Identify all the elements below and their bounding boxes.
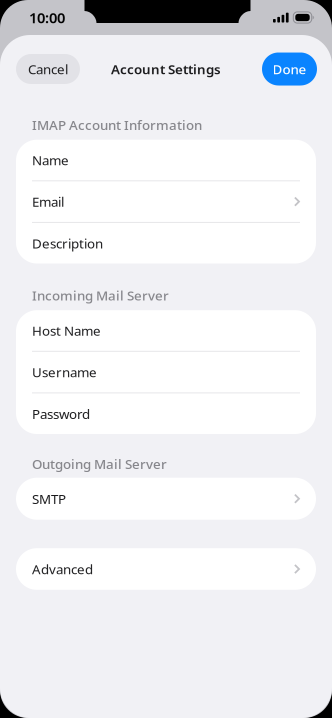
staticText: Done — [272, 60, 306, 78]
staticText: Host Name — [32, 322, 101, 339]
staticText: Email — [32, 193, 64, 210]
button[interactable]: Description — [16, 223, 316, 263]
button[interactable]: Advanced — [16, 548, 316, 590]
staticText: Password — [32, 405, 90, 423]
staticText: Name — [32, 151, 69, 169]
button[interactable]: Cancel — [16, 54, 80, 84]
button[interactable]: Done — [262, 52, 317, 85]
staticText: Incoming Mail Server — [32, 286, 169, 304]
button[interactable]: Host Name — [16, 310, 316, 351]
staticText: Advanced — [32, 560, 93, 578]
staticText: 10:00 — [29, 8, 65, 27]
staticText: Outgoing Mail Server — [32, 455, 167, 473]
staticText: Cancel — [28, 60, 68, 78]
staticText: Username — [32, 363, 97, 381]
button[interactable]: Email — [16, 181, 316, 222]
button[interactable]: SMTP — [16, 478, 316, 520]
staticText: Description — [32, 234, 103, 252]
button[interactable]: Password — [16, 393, 316, 434]
staticText: SMTP — [32, 490, 66, 508]
staticText: IMAP Account Information — [32, 116, 202, 134]
button[interactable]: Username — [16, 352, 316, 392]
button[interactable]: Name — [16, 140, 316, 180]
staticText: Account Settings — [111, 60, 221, 78]
